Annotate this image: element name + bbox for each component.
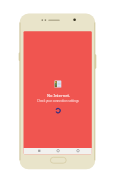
staticText: Check your connection settings bbox=[37, 99, 79, 103]
button[interactable]: Home button bbox=[50, 157, 66, 163]
button[interactable]: Home bbox=[50, 148, 66, 154]
button[interactable]: Back bbox=[70, 148, 86, 154]
staticText: No Internet. bbox=[47, 93, 70, 98]
button[interactable]: Recent apps bbox=[30, 148, 46, 154]
